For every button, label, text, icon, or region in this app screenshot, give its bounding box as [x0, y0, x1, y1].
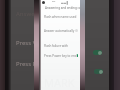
staticText: Flash failure with answer calls	[44, 44, 78, 48]
staticText: Press V	[16, 39, 37, 47]
staticText: Press R	[16, 60, 37, 68]
staticText: Flash when name used	[44, 15, 77, 19]
staticText: Answer	[16, 10, 37, 18]
button[interactable]: Flash failure with answer calls	[41, 40, 80, 51]
staticText: Answering and ending calls	[45, 6, 84, 10]
button[interactable]: Toggle	[94, 69, 103, 74]
staticText: Answer automatically	[44, 29, 75, 33]
button[interactable]: Answer automatically	[41, 25, 80, 36]
staticText: Press Power key to end	[44, 54, 77, 58]
staticText: ▬▬▌	[61, 1, 69, 4]
staticText: •••	[52, 0, 56, 4]
button[interactable]: Press Power key to end	[41, 50, 80, 61]
button[interactable]: Toggle	[93, 50, 102, 55]
button[interactable]: Flash when name used	[41, 11, 80, 22]
